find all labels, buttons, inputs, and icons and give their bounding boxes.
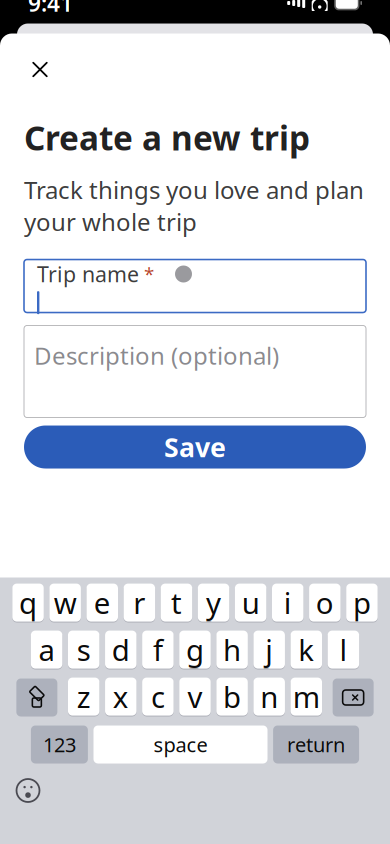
staticText: b <box>223 677 241 716</box>
staticText: Create a new trip <box>24 115 310 160</box>
button[interactable]: i <box>272 584 303 622</box>
button[interactable]: n <box>253 678 285 716</box>
button[interactable]: Delete <box>333 678 374 716</box>
staticText: n <box>260 677 278 716</box>
button[interactable]: s <box>68 631 99 669</box>
button[interactable]: z <box>68 678 99 716</box>
button[interactable]: c <box>142 678 174 716</box>
staticText: h <box>223 631 241 670</box>
staticText: g <box>186 630 204 669</box>
button[interactable]: 123 <box>31 725 88 763</box>
staticText: l <box>339 631 347 670</box>
staticText: u <box>242 583 260 622</box>
button[interactable]: Save <box>24 425 366 468</box>
staticText: s <box>77 631 91 670</box>
staticText: e <box>94 584 111 623</box>
staticText: Description (optional) <box>34 339 279 371</box>
button[interactable]: o <box>309 584 341 622</box>
staticText: l <box>339 630 347 669</box>
staticText: Trip name <box>37 260 139 288</box>
staticText: h <box>223 630 241 669</box>
staticText: * <box>139 262 154 286</box>
staticText: n <box>260 678 278 717</box>
staticText: y <box>206 584 221 623</box>
button[interactable]: a <box>31 631 62 669</box>
button[interactable]: l <box>328 631 359 669</box>
staticText: 123 <box>43 731 76 758</box>
button[interactable]: space <box>93 725 267 763</box>
staticText: w <box>54 583 77 622</box>
staticText: q <box>19 584 37 623</box>
staticText: e <box>94 583 111 622</box>
button[interactable]: Trip name, required <box>24 259 366 312</box>
button[interactable]: Close <box>18 47 62 91</box>
button[interactable]: r <box>124 584 155 622</box>
button[interactable]: d <box>105 631 136 669</box>
staticText: t <box>171 584 182 623</box>
button[interactable]: x <box>105 678 136 716</box>
staticText: q <box>19 583 37 622</box>
staticText: f <box>153 630 163 669</box>
button[interactable]: y <box>198 584 229 622</box>
staticText: z <box>77 678 91 717</box>
staticText: j <box>265 630 273 669</box>
staticText: p <box>353 584 371 623</box>
staticText: m <box>293 677 320 716</box>
button[interactable]: w <box>49 584 81 622</box>
button[interactable]: j <box>253 631 285 669</box>
button[interactable]: b <box>216 678 248 716</box>
button[interactable]: f <box>142 631 174 669</box>
button[interactable]: e <box>86 584 118 622</box>
button[interactable]: t <box>161 584 192 622</box>
staticText: t <box>171 583 182 622</box>
staticText: k <box>298 631 314 670</box>
staticText: d <box>112 631 130 670</box>
button[interactable]: k <box>290 631 322 669</box>
staticText: s <box>77 630 91 669</box>
staticText: o <box>316 583 334 622</box>
staticText: y <box>206 583 221 622</box>
staticText: j <box>265 631 273 670</box>
staticText: c <box>151 678 165 717</box>
staticText: v <box>187 678 202 717</box>
button[interactable]: Shift <box>16 678 57 716</box>
staticText: v <box>187 677 202 716</box>
staticText: b <box>223 678 241 717</box>
button[interactable]: g <box>179 631 211 669</box>
staticText: i <box>284 583 292 622</box>
staticText: d <box>112 630 130 669</box>
staticText: 9:41 <box>28 0 73 18</box>
staticText: r <box>133 584 145 623</box>
staticText: a <box>39 630 55 669</box>
button[interactable]: v <box>179 678 211 716</box>
staticText: Save <box>164 429 226 465</box>
staticText: c <box>151 677 165 716</box>
staticText: x <box>113 677 129 716</box>
staticText: return <box>287 731 345 758</box>
staticText: o <box>316 584 334 623</box>
button[interactable]: return <box>273 725 359 763</box>
staticText: Track things you love and plan your whol… <box>24 174 364 237</box>
staticText: r <box>133 583 145 622</box>
staticText: w <box>54 584 77 623</box>
staticText: k <box>298 630 314 669</box>
button[interactable]: p <box>346 584 378 622</box>
button[interactable]: u <box>235 584 266 622</box>
staticText: u <box>242 584 260 623</box>
button[interactable]: Description, optional <box>24 325 366 417</box>
button[interactable]: q <box>12 584 44 622</box>
staticText: z <box>77 677 91 716</box>
button[interactable]: Emoji keyboard <box>8 773 48 807</box>
staticText: m <box>293 678 320 717</box>
staticText: i <box>284 584 292 623</box>
staticText: a <box>39 631 55 670</box>
staticText: g <box>186 631 204 670</box>
staticText: x <box>113 678 129 717</box>
button[interactable]: m <box>290 678 322 716</box>
button[interactable]: h <box>216 631 248 669</box>
staticText: space <box>153 731 207 758</box>
staticText: p <box>353 583 371 622</box>
staticText: f <box>153 631 163 670</box>
